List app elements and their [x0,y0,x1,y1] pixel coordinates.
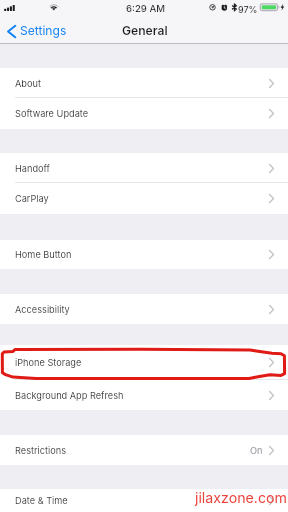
staticText: CarPlay [15,193,49,204]
staticText: On [250,445,263,456]
button[interactable]: Handoff [0,153,288,183]
staticText: About [15,78,41,89]
button[interactable]: Date & Time [0,489,288,512]
button[interactable]: Software Update [0,98,288,129]
staticText: 6:29 AM [126,3,166,15]
staticText: Restrictions [15,445,67,456]
staticText: jilaxzone.com [195,489,287,506]
staticText: General [122,23,168,38]
button[interactable]: About [0,68,288,98]
button[interactable]: Settings [0,21,75,42]
button[interactable]: Home Button [0,240,288,269]
button[interactable]: CarPlay [0,183,288,214]
button[interactable]: Restrictions [0,435,288,465]
staticText: Background App Refresh [15,390,124,401]
staticText: Settings [20,23,67,38]
staticText: Home Button [15,249,72,260]
staticText: iPhone Storage [15,357,82,368]
button[interactable]: iPhone Storage [0,345,288,380]
staticText: Software Update [15,108,89,119]
staticText: 97% [238,4,258,15]
staticText: Date & Time [15,495,68,506]
staticText: Accessibility [15,304,70,315]
button[interactable]: Background App Refresh [0,380,288,410]
staticText: Handoff [15,163,50,174]
button[interactable]: Accessibility [0,294,288,324]
